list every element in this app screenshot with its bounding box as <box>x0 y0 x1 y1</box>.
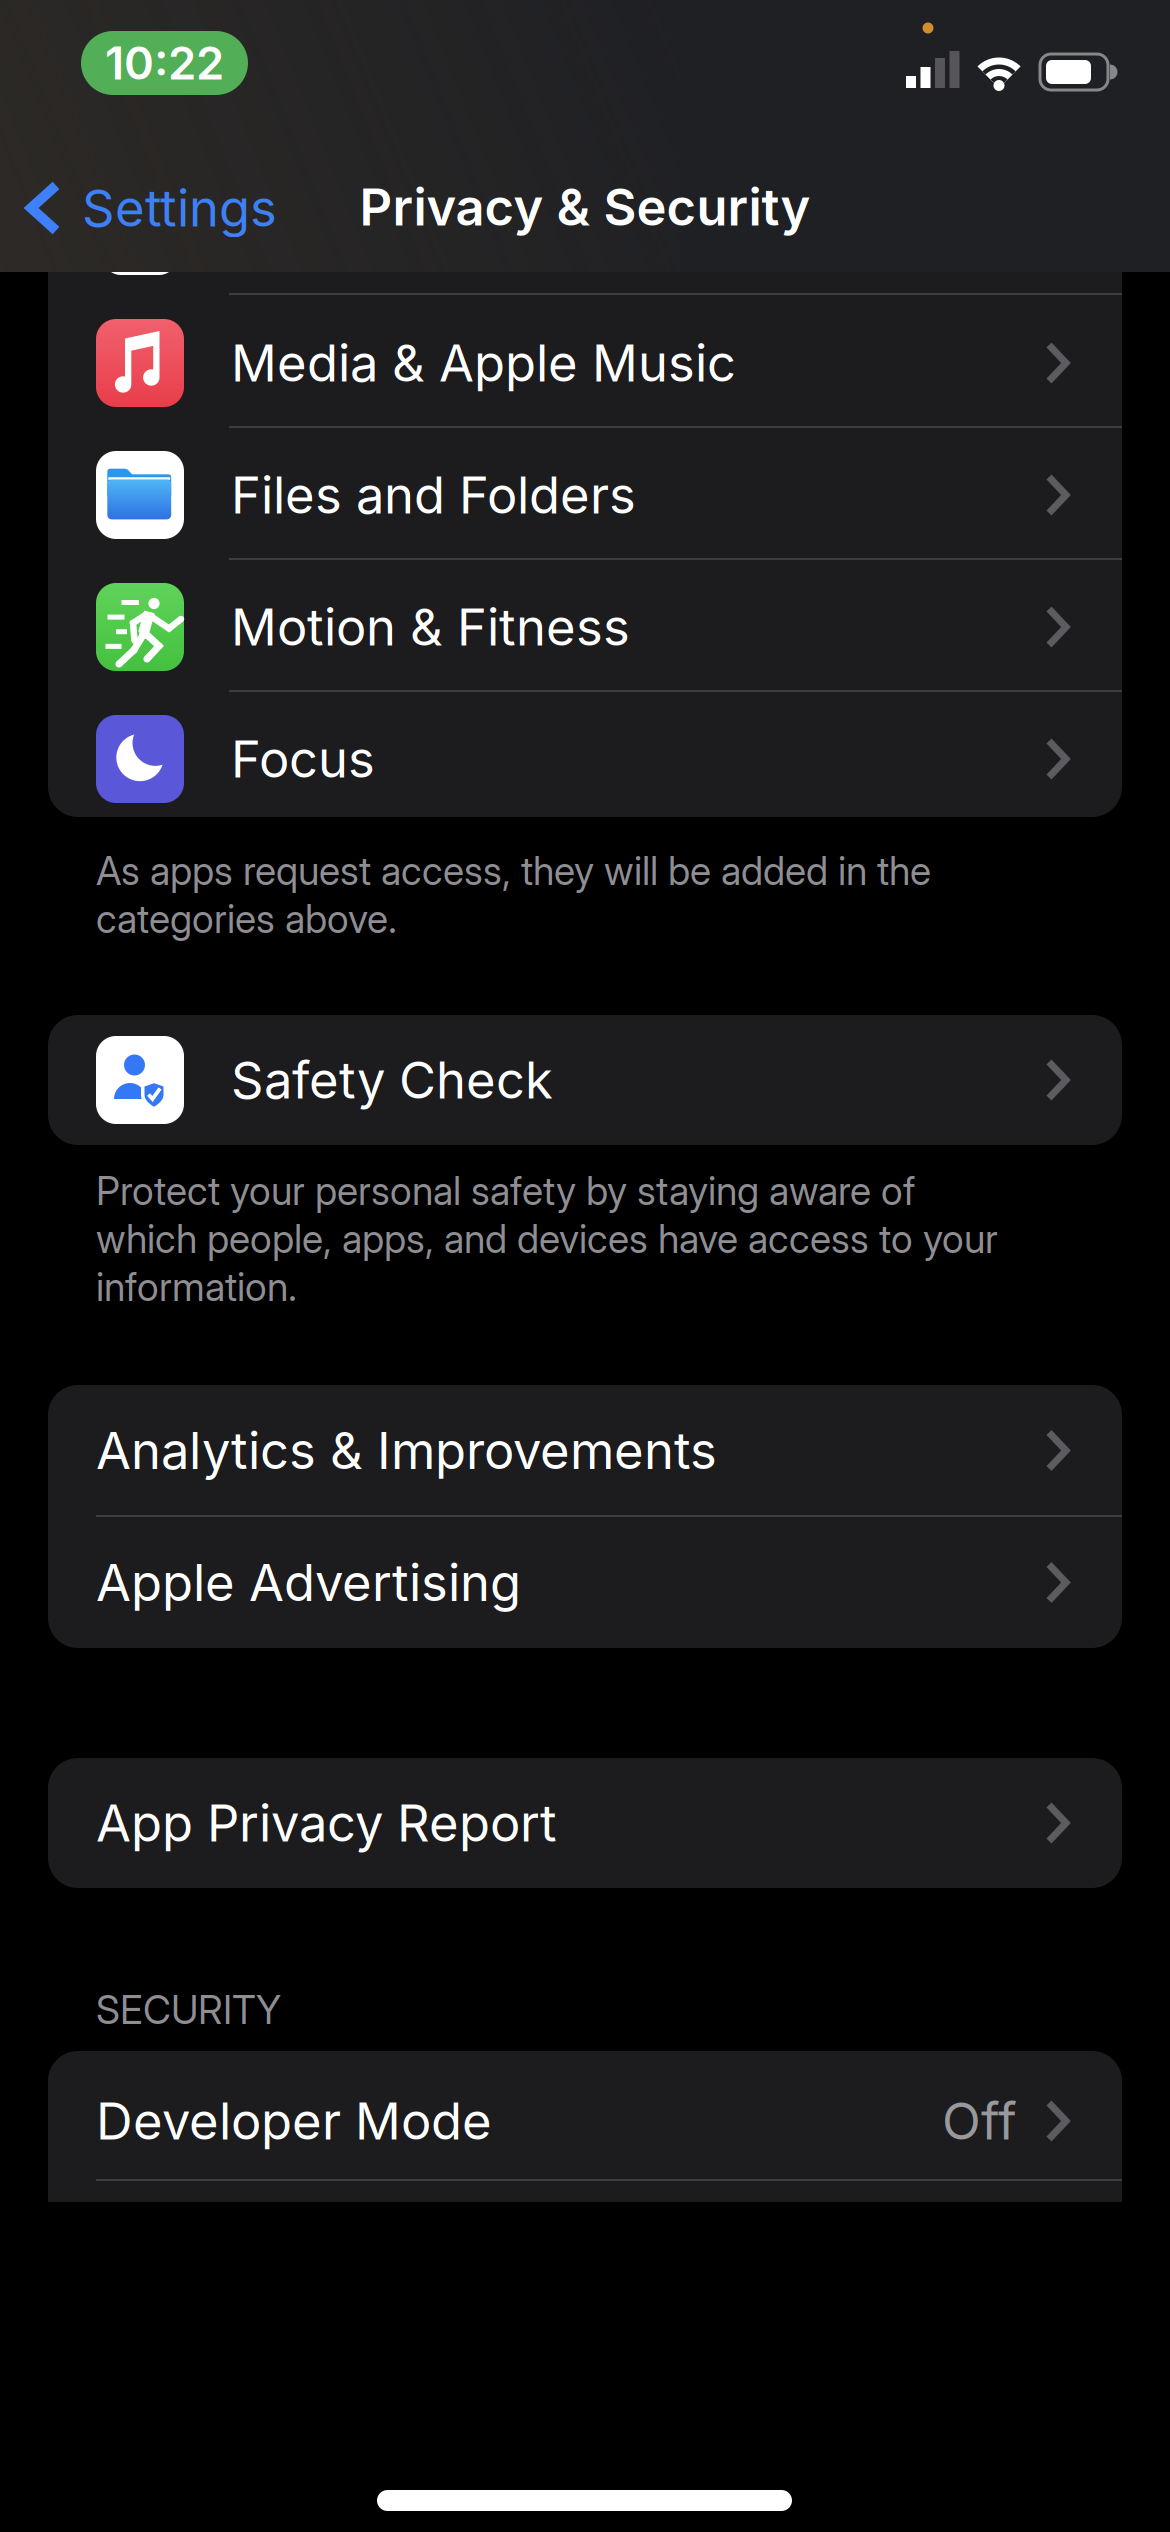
staticText: information. <box>96 1264 297 1310</box>
button[interactable]: Safety Check <box>48 1014 1122 1146</box>
button[interactable]: Analytics & Improvements <box>48 1385 1122 1516</box>
staticText: Analytics & Improvements <box>96 1421 717 1480</box>
button[interactable]: Apple Advertising <box>48 1517 1122 1648</box>
button[interactable]: Settings <box>27 168 527 248</box>
button[interactable]: Files and Folders <box>48 429 1122 561</box>
staticText: Media & Apple Music <box>231 333 736 393</box>
staticText: Developer Mode <box>96 2091 492 2151</box>
staticText: App Privacy Report <box>96 1793 557 1853</box>
staticText: SECURITY <box>96 1987 281 2033</box>
staticText: Privacy & Security <box>359 177 810 237</box>
button[interactable]: App Privacy Report <box>48 1757 1122 1888</box>
staticText: Off <box>942 2091 1017 2151</box>
staticText: Files and Folders <box>231 465 636 525</box>
staticText: Motion & Fitness <box>231 597 630 657</box>
staticText: categories above. <box>96 896 397 942</box>
staticText: Focus <box>231 729 375 789</box>
button[interactable]: Media & Apple Music <box>48 297 1122 429</box>
staticText: Safety Check <box>231 1050 553 1110</box>
staticText: Settings <box>82 178 277 238</box>
staticText: Protect your personal safety by staying … <box>96 1168 915 1214</box>
button[interactable]: Motion & Fitness <box>48 561 1122 693</box>
button[interactable]: Developer Mode <box>48 2055 1122 2186</box>
staticText: which people, apps, and devices have acc… <box>96 1216 998 1262</box>
staticText: As apps request access, they will be add… <box>96 848 931 894</box>
button[interactable]: Focus <box>48 693 1122 825</box>
button[interactable]: 10:22 <box>81 31 248 95</box>
staticText: 10:22 <box>105 36 224 90</box>
staticText: Apple Advertising <box>96 1553 521 1612</box>
